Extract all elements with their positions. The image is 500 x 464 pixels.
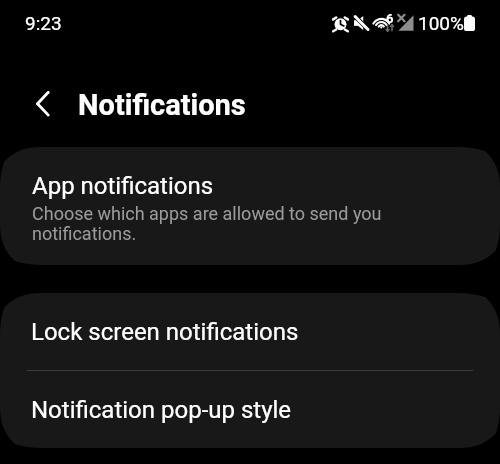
staticText: Notifications — [78, 88, 246, 122]
staticText: 9:23 — [25, 12, 62, 34]
staticText: 6 — [386, 11, 394, 26]
staticText: Lock screen notifications — [31, 318, 299, 346]
button[interactable]: Notification pop-up style — [0, 371, 500, 448]
staticText: Notification pop-up style — [31, 396, 292, 424]
staticText: Choose which apps are allowed to send yo… — [32, 203, 389, 244]
button[interactable]: Lock screen notifications — [0, 293, 500, 370]
button[interactable]: Back — [24, 89, 54, 119]
staticText: App notifications — [32, 172, 214, 200]
staticText: 100% — [418, 12, 464, 34]
button[interactable]: App notifications — [0, 147, 500, 265]
